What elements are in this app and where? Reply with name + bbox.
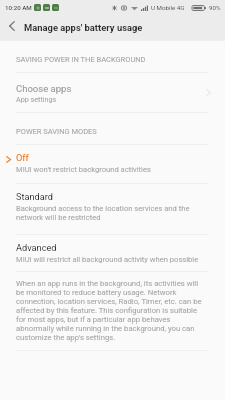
button[interactable]: Back [0, 14, 24, 38]
staticText: When an app runs in the background, its … [16, 279, 204, 342]
staticText: Manage apps' battery usage [24, 22, 143, 33]
staticText: Standard [16, 191, 53, 202]
staticText: Choose apps [16, 83, 72, 94]
other: Open [205, 88, 212, 97]
staticText: U Mobile 4G [151, 4, 185, 11]
button[interactable]: Advanced [0, 235, 225, 271]
staticText: MIUI won't restrict background activitie… [16, 165, 151, 174]
staticText: 90% [209, 4, 221, 11]
button[interactable]: Choose apps [0, 73, 225, 112]
staticText: MIUI will restrict all background activi… [16, 255, 199, 264]
staticText: Advanced [16, 242, 57, 253]
button[interactable]: Off [0, 145, 225, 183]
staticText: App settings [16, 95, 57, 103]
staticText: SAVING POWER IN THE BACKGROUND [16, 55, 146, 64]
staticText: 10:20 AM [5, 4, 32, 11]
staticText: POWER SAVING MODES [16, 127, 97, 136]
button[interactable]: Standard [0, 184, 225, 234]
staticText: Background access to the location servic… [16, 204, 201, 222]
staticText: Off [16, 152, 29, 163]
